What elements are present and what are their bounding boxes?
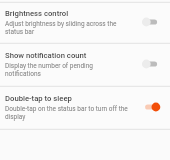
- button[interactable]: Brightness control: [141, 16, 162, 28]
- staticText: Brightness control: [5, 9, 69, 18]
- staticText: Display the number of pending notificati…: [5, 62, 129, 77]
- staticText: Double-tap to sleep: [5, 94, 72, 103]
- button[interactable]: Double-tap to sleep: [141, 101, 162, 113]
- staticText: Adjust brightness by sliding across the …: [5, 20, 129, 35]
- button[interactable]: Double-tap to sleep: [0, 87, 170, 129]
- button[interactable]: Show notification count: [0, 44, 170, 86]
- button[interactable]: Brightness control: [0, 3, 170, 43]
- button[interactable]: Show notification count: [141, 58, 162, 70]
- staticText: Double-tap on the status bar to turn off…: [5, 105, 129, 120]
- staticText: Show notification count: [5, 51, 87, 60]
